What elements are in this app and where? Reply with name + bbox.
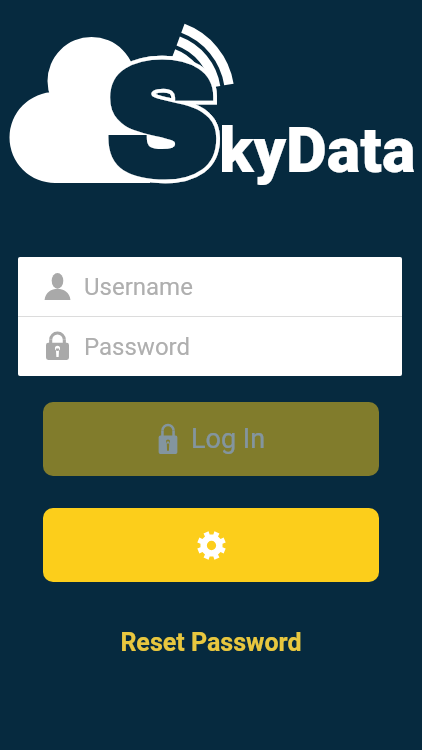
staticText: Log In (191, 423, 266, 455)
button[interactable]: Username (18, 257, 402, 316)
button[interactable]: Settings (43, 508, 379, 582)
staticText: kyData (219, 114, 416, 188)
staticText: S (104, 35, 220, 209)
button[interactable]: Password (18, 317, 402, 376)
staticText: Reset Password (120, 628, 302, 657)
staticText: Username (84, 273, 193, 301)
staticText: Password (84, 333, 191, 361)
button[interactable]: Log In (43, 402, 379, 476)
button[interactable]: Reset Password (0, 627, 422, 657)
staticText: S (104, 35, 220, 209)
